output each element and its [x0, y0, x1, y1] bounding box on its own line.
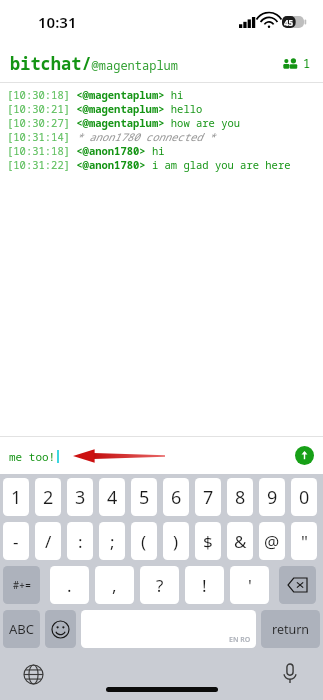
button[interactable]: ABC: [3, 610, 40, 648]
button[interactable]: !: [185, 566, 224, 604]
button[interactable]: ': [230, 566, 269, 604]
staticText: ABC: [9, 620, 34, 638]
staticText: 1: [11, 485, 22, 510]
button[interactable]: 5: [131, 478, 157, 516]
staticText: EN RO: [229, 635, 251, 645]
staticText: 1: [303, 55, 311, 71]
button[interactable]: 7: [195, 478, 221, 516]
button[interactable]: @: [259, 522, 285, 560]
staticText: ,: [112, 574, 117, 597]
staticText: return: [272, 621, 310, 638]
staticText: ): [173, 530, 179, 553]
staticText: [10:31:22] <@anon1780> i am glad you are…: [7, 158, 291, 172]
button[interactable]: People online: [281, 51, 313, 75]
staticText: bitchat/@magentaplum: [10, 52, 179, 75]
button[interactable]: 6: [163, 478, 189, 516]
button[interactable]: me too!: [9, 448, 295, 464]
button[interactable]: Dictation: [275, 659, 305, 689]
staticText: .: [67, 574, 72, 597]
staticText: 5: [139, 485, 150, 510]
staticText: ": [301, 530, 308, 553]
button[interactable]: &: [227, 522, 253, 560]
staticText: ;: [110, 530, 115, 553]
staticText: 45: [284, 17, 294, 28]
button[interactable]: 4: [99, 478, 125, 516]
staticText: 4: [107, 485, 118, 510]
staticText: @: [264, 530, 280, 553]
button[interactable]: ,: [95, 566, 134, 604]
staticText: 2: [43, 485, 54, 510]
button[interactable]: Emoji: [45, 610, 76, 648]
staticText: 3: [75, 485, 86, 510]
button[interactable]: return: [261, 610, 320, 648]
button[interactable]: 1: [3, 478, 29, 516]
button[interactable]: ": [291, 522, 317, 560]
button[interactable]: #+=: [3, 566, 40, 604]
button[interactable]: :: [67, 522, 93, 560]
button[interactable]: 8: [227, 478, 253, 516]
staticText: (: [141, 530, 147, 553]
staticText: 8: [235, 485, 246, 510]
staticText: [10:31:18] <@anon1780> hi: [7, 144, 165, 158]
staticText: 10:31: [38, 12, 77, 32]
staticText: &: [234, 530, 247, 553]
staticText: ?: [156, 574, 164, 597]
staticText: -: [13, 530, 19, 553]
button[interactable]: ): [163, 522, 189, 560]
staticText: 9: [267, 485, 278, 510]
button[interactable]: 3: [67, 478, 93, 516]
staticText: $: [203, 530, 213, 553]
staticText: !: [202, 574, 207, 597]
staticText: 7: [203, 485, 214, 510]
staticText: /: [45, 530, 52, 553]
button[interactable]: Send: [295, 446, 314, 465]
button[interactable]: $: [195, 522, 221, 560]
button[interactable]: (: [131, 522, 157, 560]
staticText: [10:30:18] <@magentaplum> hi: [7, 88, 184, 102]
button[interactable]: 0: [291, 478, 317, 516]
staticText: ': [248, 574, 252, 597]
staticText: [10:30:27] <@magentaplum> how are you: [7, 116, 241, 130]
staticText: [10:31:14] * anon1780 connected *: [7, 130, 215, 144]
button[interactable]: 9: [259, 478, 285, 516]
button[interactable]: ;: [99, 522, 125, 560]
button[interactable]: -: [3, 522, 29, 560]
staticText: [10:30:21] <@magentaplum> hello: [7, 102, 203, 116]
button[interactable]: /: [35, 522, 61, 560]
button[interactable]: 2: [35, 478, 61, 516]
staticText: #+=: [13, 578, 31, 592]
staticText: 6: [171, 485, 182, 510]
staticText: :: [78, 530, 83, 553]
button[interactable]: .: [50, 566, 89, 604]
button[interactable]: ?: [140, 566, 179, 604]
button[interactable]: Backspace: [279, 566, 316, 604]
staticText: me too!: [9, 449, 56, 464]
staticText: 0: [299, 485, 310, 510]
button[interactable]: Change keyboard: [18, 659, 48, 689]
button[interactable]: Space: [81, 610, 256, 648]
